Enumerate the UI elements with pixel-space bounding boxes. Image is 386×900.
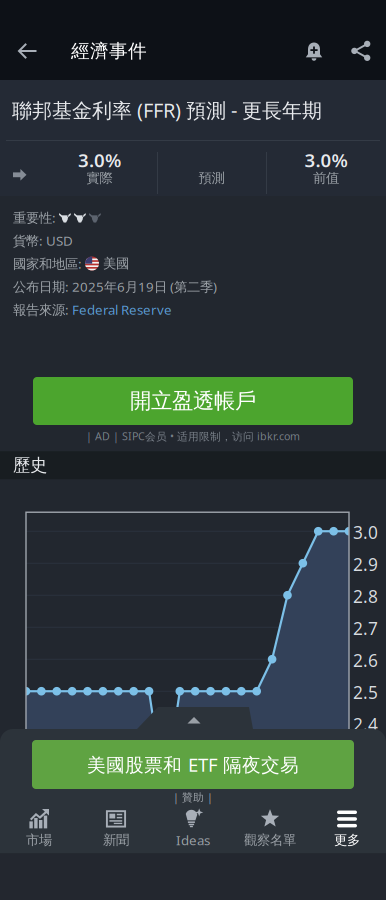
button[interactable]: Back xyxy=(0,25,54,77)
staticText: 美國股票和 ETF 隔夜交易 xyxy=(87,752,299,777)
staticText: 重要性: xyxy=(13,209,59,226)
button[interactable]: Federal Reserve xyxy=(72,301,172,318)
staticText: 預測 xyxy=(198,170,224,186)
staticText: | AD | SIPC会员 • 适用限制，访问 ibkr.com xyxy=(86,429,300,443)
staticText: 聯邦基金利率 (FFR) 預測 - 更長年期 xyxy=(12,97,322,123)
staticText: 報告來源: xyxy=(13,301,72,318)
button[interactable]: 新聞 xyxy=(77,804,154,853)
staticText: 2.6 xyxy=(353,649,378,672)
staticText: 公布日期: 2025年6月19日 (第二季) xyxy=(13,278,217,295)
staticText: Federal Reserve xyxy=(72,301,172,318)
staticText: 更多 xyxy=(334,832,360,848)
staticText: 前值 xyxy=(313,170,339,186)
button[interactable]: Create alert xyxy=(292,25,336,77)
staticText: | 贊助 | xyxy=(173,790,213,804)
button[interactable]: 開立盈透帳戶 xyxy=(33,377,353,425)
staticText: 貨幣: USD xyxy=(13,232,73,249)
staticText: 經濟事件 xyxy=(71,39,147,62)
button[interactable]: Ideas xyxy=(154,804,231,853)
button[interactable]: 觀察名單 xyxy=(231,804,308,853)
button[interactable]: 市場 xyxy=(0,804,77,853)
staticText: 2.8 xyxy=(353,585,378,608)
staticText: 2.7 xyxy=(353,617,378,640)
staticText: Ideas xyxy=(176,831,210,849)
staticText: 3.0% xyxy=(304,148,347,172)
button[interactable]: 更多 xyxy=(308,804,385,853)
staticText: 市場 xyxy=(26,832,52,848)
staticText: 新聞 xyxy=(103,832,129,848)
staticText: 國家和地區: xyxy=(13,255,85,272)
staticText: 歷史 xyxy=(13,455,47,476)
staticText: 3.0 xyxy=(353,521,378,544)
staticText: 開立盈透帳戶 xyxy=(130,388,256,414)
staticText: 實際 xyxy=(86,170,112,186)
staticText: 觀察名單 xyxy=(244,832,296,848)
staticText: 3.0% xyxy=(78,148,121,172)
staticText: 美國 xyxy=(99,255,129,272)
staticText: 2.5 xyxy=(353,681,378,704)
button[interactable]: Share xyxy=(336,25,386,77)
staticText: 2.9 xyxy=(353,553,378,576)
button[interactable]: 美國股票和 ETF 隔夜交易 xyxy=(32,740,354,789)
staticText: 2.4 xyxy=(353,713,378,736)
